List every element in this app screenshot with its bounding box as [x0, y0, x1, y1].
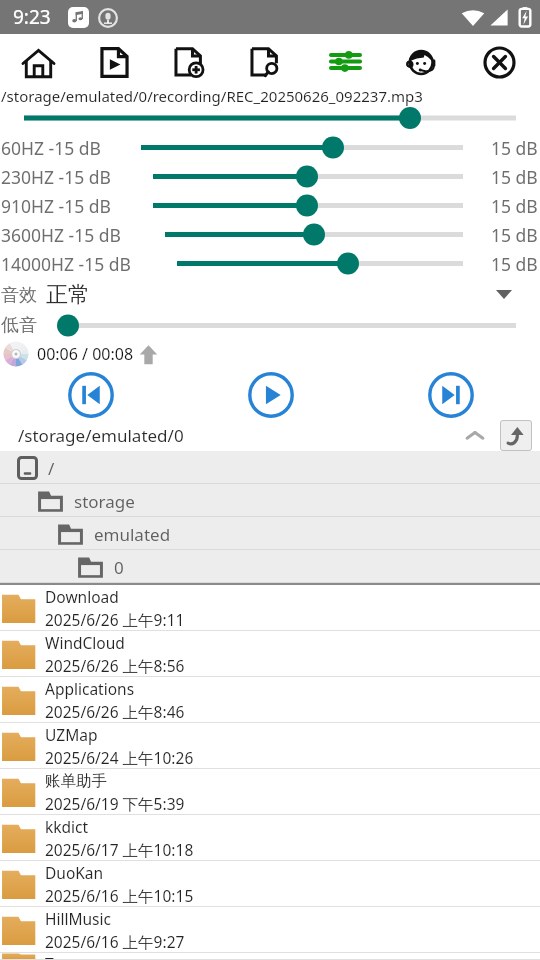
button[interactable]: 60HZ -15 dB: [0, 133, 540, 162]
button[interactable]: Equalizer: [322, 38, 368, 84]
staticText: 2025/6/24 上午10:26: [45, 747, 194, 768]
staticText: 14000HZ -15 dB: [1, 252, 131, 276]
staticText: Applications: [45, 678, 135, 699]
staticText: /storage/emulated/0/recording/REC_202506…: [1, 86, 423, 106]
button[interactable]: 音效: [0, 278, 540, 311]
button[interactable]: 3600HZ -15 dB: [0, 220, 540, 249]
staticText: 15 dB: [491, 223, 538, 247]
button[interactable]: 230HZ -15 dB: [0, 162, 540, 191]
staticText: Download: [45, 586, 119, 607]
staticText: HillMusic: [45, 908, 111, 929]
staticText: 15 dB: [491, 252, 538, 276]
staticText: 2025/6/16 上午9:27: [45, 931, 185, 952]
button[interactable]: 账单助手: [0, 769, 540, 815]
button[interactable]: HillMusic: [0, 907, 540, 953]
button[interactable]: Search file: [243, 39, 289, 85]
button[interactable]: /: [0, 451, 540, 484]
staticText: WindCloud: [45, 632, 125, 653]
staticText: 910HZ -15 dB: [1, 194, 111, 218]
button[interactable]: Home: [15, 39, 61, 85]
button[interactable]: kkdict: [0, 815, 540, 861]
button[interactable]: WindCloud: [0, 631, 540, 677]
button[interactable]: Close: [476, 39, 522, 85]
staticText: UZMap: [45, 724, 98, 745]
button[interactable]: Next: [427, 371, 475, 419]
staticText: DuoKan: [45, 862, 104, 883]
staticText: 2025/6/26 上午8:46: [45, 701, 185, 722]
button[interactable]: Add file: [167, 39, 213, 85]
staticText: 低音: [1, 314, 37, 337]
button[interactable]: 910HZ -15 dB: [0, 191, 540, 220]
staticText: storage: [74, 490, 135, 513]
staticText: 0: [114, 556, 124, 579]
staticText: 230HZ -15 dB: [1, 165, 111, 189]
button[interactable]: Up: [137, 343, 159, 365]
button[interactable]: emulated: [0, 517, 540, 550]
staticText: /: [48, 457, 55, 480]
button[interactable]: Parent directory: [500, 420, 532, 451]
staticText: 2025/6/16 上午10:15: [45, 885, 194, 906]
button[interactable]: storage: [0, 484, 540, 517]
button[interactable]: 0: [0, 550, 540, 583]
staticText: 2025/6/26 上午9:11: [45, 609, 185, 630]
staticText: 00:06 / 00:08: [37, 343, 134, 365]
staticText: 60HZ -15 dB: [1, 136, 101, 160]
button[interactable]: Support: [399, 39, 445, 85]
staticText: 2025/6/17 上午10:18: [45, 839, 194, 860]
staticText: 2025/6/19 下午5:39: [45, 793, 185, 814]
button[interactable]: Previous: [67, 371, 115, 419]
button[interactable]: 14000HZ -15 dB: [0, 249, 540, 278]
button[interactable]: UZMap: [0, 723, 540, 769]
staticText: 音效: [1, 284, 37, 307]
button[interactable]: Collapse: [461, 422, 489, 450]
staticText: emulated: [94, 523, 171, 546]
button[interactable]: Play file: [91, 39, 137, 85]
staticText: 9:23: [13, 4, 51, 30]
button[interactable]: 低音: [0, 311, 540, 340]
staticText: 3600HZ -15 dB: [1, 223, 121, 247]
staticText: 15 dB: [491, 194, 538, 218]
staticText: Tencent: [45, 953, 103, 960]
button[interactable]: Download: [0, 585, 540, 631]
staticText: 15 dB: [491, 165, 538, 189]
staticText: /storage/emulated/0: [18, 424, 184, 447]
button[interactable]: Applications: [0, 677, 540, 723]
button[interactable]: Play: [247, 371, 295, 419]
button[interactable]: Tencent: [0, 953, 540, 960]
button[interactable]: DuoKan: [0, 861, 540, 907]
staticText: 2025/6/26 上午8:56: [45, 655, 185, 676]
staticText: 正常: [46, 281, 90, 309]
staticText: kkdict: [45, 816, 89, 837]
staticText: 15 dB: [491, 136, 538, 160]
staticText: 账单助手: [45, 771, 107, 791]
